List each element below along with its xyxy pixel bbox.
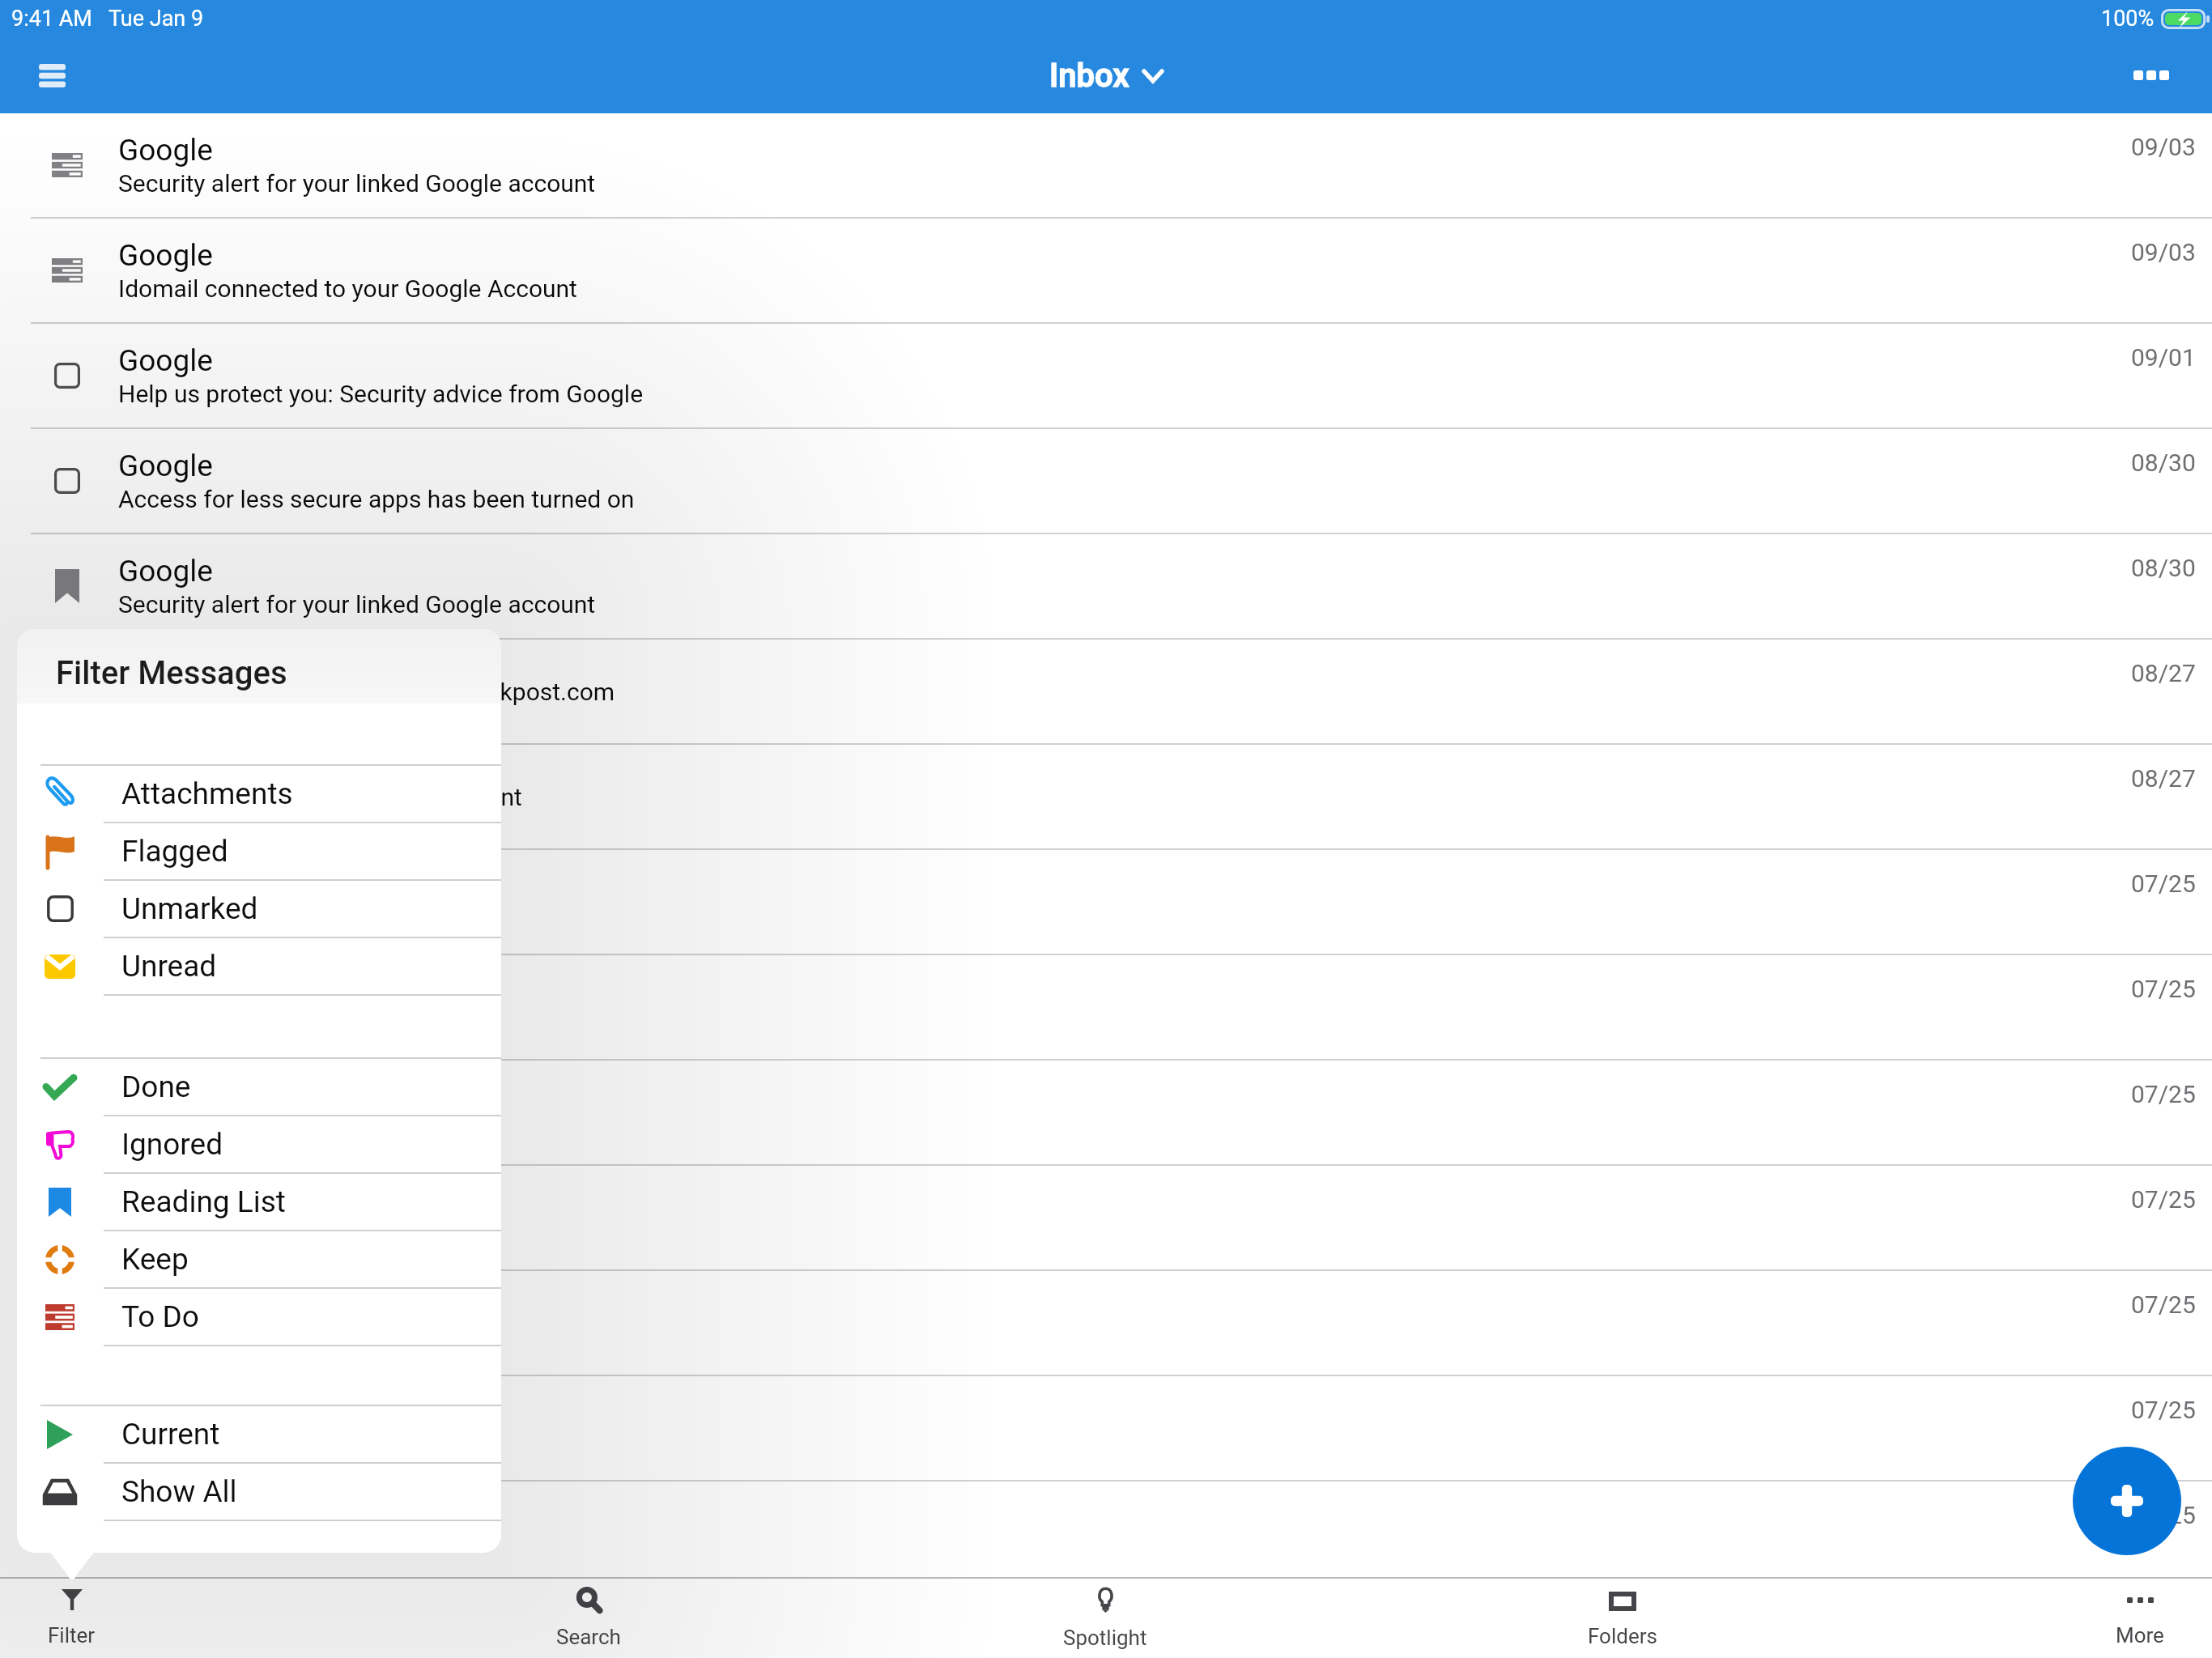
button[interactable]: Google — [0, 219, 2212, 324]
button[interactable]: More — [2059, 1579, 2212, 1658]
staticText: 07/25 — [2131, 1080, 2196, 1108]
staticText: Current — [121, 1417, 220, 1452]
button[interactable]: 07/25 — [0, 1376, 2212, 1482]
staticText: 07/25 — [2131, 869, 2196, 898]
staticText: Google — [118, 343, 213, 378]
staticText: Tue Jan 9 — [108, 6, 204, 32]
button[interactable]: Inbox — [1049, 57, 1163, 95]
staticText: To Do — [121, 1299, 199, 1334]
staticText: Security alert for your linked Google ac… — [118, 169, 596, 198]
staticText: 09/01 — [2131, 343, 2196, 372]
button[interactable]: Menu — [27, 50, 77, 100]
staticText: Google — [118, 133, 213, 168]
staticText: Ignored — [121, 1127, 223, 1162]
staticText: 9:41 AM — [11, 6, 92, 32]
staticText: 08/27 — [2131, 764, 2196, 793]
button[interactable]: 07/25 — [0, 1271, 2212, 1376]
staticText: Idomail connected to your Google Account — [118, 274, 577, 303]
button[interactable]: 07/25 — [0, 850, 2212, 955]
staticText: 08/30 — [2131, 554, 2196, 582]
button[interactable]: Show All — [17, 1464, 501, 1521]
staticText: 07/25 — [2131, 1501, 2196, 1529]
button[interactable]: 07/25 — [0, 955, 2212, 1061]
staticText: 100% — [2101, 6, 2155, 32]
button[interactable]: Security alert on your Google account — [0, 745, 2212, 850]
button[interactable]: 07/25 — [0, 1482, 2212, 1587]
staticText: 09/03 — [2131, 133, 2196, 161]
button[interactable]: More options — [2126, 50, 2176, 100]
staticText: More — [2116, 1623, 2164, 1647]
staticText: Unread — [121, 949, 217, 984]
button[interactable]: Done — [17, 1059, 501, 1116]
staticText: Filter Messages — [56, 654, 287, 692]
staticText: 07/25 — [2131, 1185, 2196, 1214]
button[interactable]: Attachments — [17, 766, 501, 823]
staticText: Keep — [121, 1242, 189, 1277]
staticText: Done — [121, 1069, 191, 1104]
staticText: Reading List — [121, 1184, 286, 1219]
button[interactable]: Undelivered Mail Sent to anna@backpost.c… — [0, 640, 2212, 745]
staticText: Google — [118, 449, 213, 483]
button[interactable]: Unmarked — [17, 881, 501, 938]
staticText: Flagged — [121, 834, 228, 869]
button[interactable]: Google — [0, 429, 2212, 534]
staticText: Undelivered Mail Sent to anna@backpost.c… — [118, 678, 615, 706]
button[interactable]: Google — [0, 324, 2212, 429]
button[interactable]: Keep — [17, 1231, 501, 1289]
button[interactable]: 07/25 — [0, 1061, 2212, 1166]
button[interactable]: Search — [508, 1579, 670, 1658]
staticText: Access for less secure apps has been tur… — [118, 485, 635, 513]
staticText: Spotlight — [1063, 1626, 1147, 1650]
staticText: 07/25 — [2131, 1290, 2196, 1319]
staticText: Inbox — [1049, 57, 1129, 95]
staticText: Filter — [48, 1623, 96, 1647]
button[interactable]: Compose — [2073, 1447, 2181, 1555]
button[interactable]: Spotlight — [1024, 1579, 1186, 1658]
staticText: Google — [118, 238, 213, 273]
button[interactable]: Unread — [17, 938, 501, 996]
staticText: 08/30 — [2131, 449, 2196, 477]
button[interactable]: Flagged — [17, 823, 501, 881]
staticText: Security alert for your linked Google ac… — [118, 590, 596, 619]
staticText: Show All — [121, 1474, 237, 1509]
button[interactable]: Google — [0, 113, 2212, 219]
staticText: 07/25 — [2131, 975, 2196, 1003]
staticText: Security alert on your Google account — [118, 783, 522, 811]
button[interactable]: Folders — [1542, 1579, 1704, 1658]
staticText: Search — [556, 1625, 621, 1649]
button[interactable]: Filter — [0, 1579, 152, 1658]
button[interactable]: Reading List — [17, 1174, 501, 1231]
button[interactable]: Google — [0, 534, 2212, 640]
button[interactable]: 07/25 — [0, 1166, 2212, 1271]
staticText: Folders — [1588, 1624, 1657, 1648]
staticText: 07/25 — [2131, 1396, 2196, 1424]
staticText: Unmarked — [121, 891, 258, 926]
staticText: 08/27 — [2131, 659, 2196, 687]
button[interactable]: Current — [17, 1406, 501, 1464]
staticText: 09/03 — [2131, 238, 2196, 266]
staticText: Attachments — [121, 776, 293, 811]
button[interactable]: Ignored — [17, 1116, 501, 1174]
staticText: Help us protect you: Security advice fro… — [118, 380, 644, 408]
staticText: Google — [118, 554, 213, 589]
button[interactable]: To Do — [17, 1289, 501, 1346]
